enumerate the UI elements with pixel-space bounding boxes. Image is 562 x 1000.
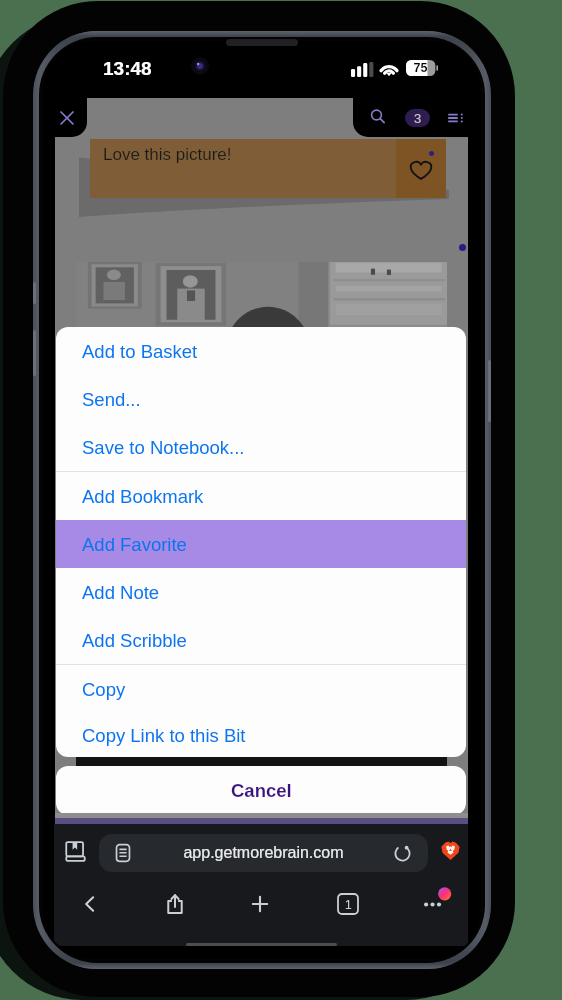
staticText: Send... <box>82 389 141 410</box>
button[interactable]: Copy Link to this Bit <box>56 713 466 757</box>
button[interactable]: 3 <box>405 109 430 127</box>
staticText: Add Bookmark <box>82 486 204 507</box>
staticText: app.getmorebrain.com <box>99 844 428 862</box>
button[interactable]: New tab <box>248 892 272 916</box>
button[interactable]: Send... <box>56 375 466 423</box>
staticText: Copy Link to this Bit <box>82 725 246 746</box>
button[interactable]: Add Scribble <box>56 616 466 664</box>
staticText: Add Favorite <box>82 534 187 555</box>
staticText: Add Note <box>82 582 160 603</box>
button[interactable]: Add Bookmark <box>56 472 466 520</box>
staticText: Love this picture! <box>103 145 232 164</box>
button[interactable]: Add to Basket <box>56 327 466 375</box>
button[interactable]: Menu <box>446 109 464 127</box>
button[interactable]: Add Favorite <box>56 520 466 568</box>
button[interactable]: Add Note <box>56 568 466 616</box>
button[interactable]: Cancel <box>56 766 466 815</box>
button[interactable]: Save to Notebook... <box>56 423 466 471</box>
button[interactable]: app.getmorebrain.com <box>99 834 428 872</box>
button[interactable]: Bookmarks <box>65 841 86 862</box>
staticText: 75 <box>406 61 435 75</box>
staticText: Add to Basket <box>82 341 198 362</box>
button[interactable]: Copy <box>56 665 466 713</box>
button[interactable]: Share <box>163 892 187 916</box>
button[interactable]: Tabs <box>337 893 359 915</box>
staticText: 3 <box>414 111 422 126</box>
staticText: Copy <box>82 679 126 700</box>
button[interactable]: Close <box>59 110 75 126</box>
button[interactable]: Brave shields <box>441 841 460 860</box>
staticText: Cancel <box>231 780 292 801</box>
staticText: 1 <box>345 898 352 911</box>
button[interactable]: Back <box>78 892 102 916</box>
staticText: 13:48 <box>103 58 152 79</box>
button[interactable]: More <box>416 882 452 918</box>
staticText: Add Scribble <box>82 630 187 651</box>
staticText: Save to Notebook... <box>82 437 245 458</box>
button[interactable]: Search <box>368 107 386 125</box>
